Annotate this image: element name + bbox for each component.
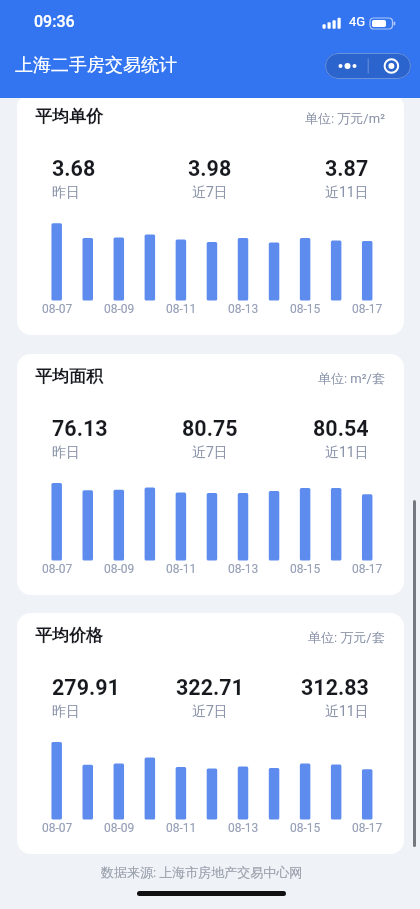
staticText: 近7日 [192,444,228,462]
staticText: 76.13 [52,416,108,441]
staticText: 08-07 [42,562,73,576]
staticText: 08-09 [104,302,135,316]
staticText: 08-17 [352,562,383,576]
staticText: 08-15 [290,562,321,576]
staticText: 08-11 [166,302,197,316]
staticText: 08-13 [228,562,259,576]
staticText: 近11日 [325,444,369,462]
staticText: 3.68 [52,156,96,181]
staticText: 近7日 [192,703,228,721]
staticText: 上海二手房交易统计 [15,54,177,77]
staticText: 平均价格 [35,625,103,646]
staticText: 08-09 [104,821,135,835]
staticText: 近7日 [192,184,228,202]
staticText: 80.75 [182,416,238,441]
staticText: 08-17 [352,821,383,835]
staticText: 昨日 [52,184,80,202]
staticText: 08-07 [42,302,73,316]
staticText: 昨日 [52,444,80,462]
staticText: 3.98 [188,156,232,181]
button[interactable] [368,53,411,79]
staticText: 08-11 [166,821,197,835]
staticText: 4G [349,14,366,29]
staticText: 08-15 [290,821,321,835]
staticText: 平均单价 [35,106,103,127]
staticText: 数据来源: 上海市房地产交易中心网 [101,864,303,880]
staticText: 08-15 [290,302,321,316]
staticText: 平均面积 [35,366,103,387]
staticText: 08-13 [228,302,259,316]
staticText: 09:36 [34,12,75,31]
staticText: 近11日 [325,184,369,202]
staticText: 单位: 万元/套 [308,629,385,645]
staticText: 08-17 [352,302,383,316]
staticText: 近11日 [325,703,369,721]
staticText: 80.54 [313,416,369,441]
staticText: 3.87 [325,156,369,181]
staticText: 279.91 [52,675,120,700]
staticText: 08-09 [104,562,135,576]
staticText: 312.83 [301,675,369,700]
staticText: 单位: 万元/m² [305,110,385,126]
staticText: 单位: m²/套 [318,370,385,386]
staticText: 08-13 [228,821,259,835]
staticText: 08-11 [166,562,197,576]
staticText: 08-07 [42,821,73,835]
button[interactable] [325,53,368,79]
staticText: 322.71 [176,675,244,700]
staticText: 昨日 [52,703,80,721]
